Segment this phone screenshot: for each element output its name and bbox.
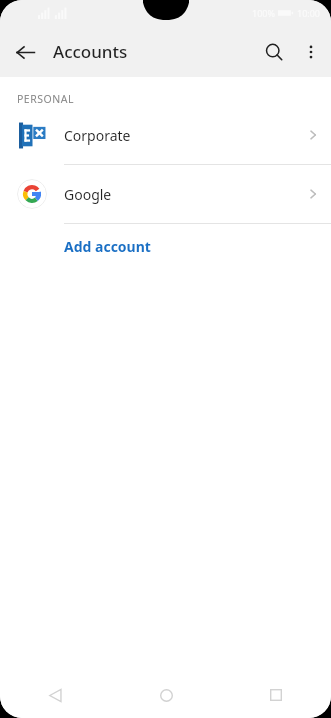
button[interactable]: Google bbox=[0, 165, 331, 223]
button[interactable]: Search bbox=[253, 31, 295, 73]
staticText: Add account bbox=[64, 237, 151, 256]
staticText: 10:00 bbox=[297, 7, 321, 19]
button[interactable]: Back bbox=[0, 672, 111, 718]
button[interactable]: Home bbox=[111, 672, 221, 718]
staticText: Accounts bbox=[53, 40, 128, 63]
button[interactable]: Corporate bbox=[0, 106, 331, 164]
button[interactable]: Back bbox=[3, 30, 47, 74]
staticText: Google bbox=[64, 185, 112, 204]
button[interactable]: More options bbox=[291, 32, 331, 72]
button[interactable]: Add account bbox=[0, 224, 331, 269]
staticText: 100% bbox=[252, 7, 275, 19]
staticText: PERSONAL bbox=[17, 92, 74, 106]
staticText: Corporate bbox=[64, 126, 131, 145]
button[interactable]: Recent apps bbox=[221, 672, 331, 718]
